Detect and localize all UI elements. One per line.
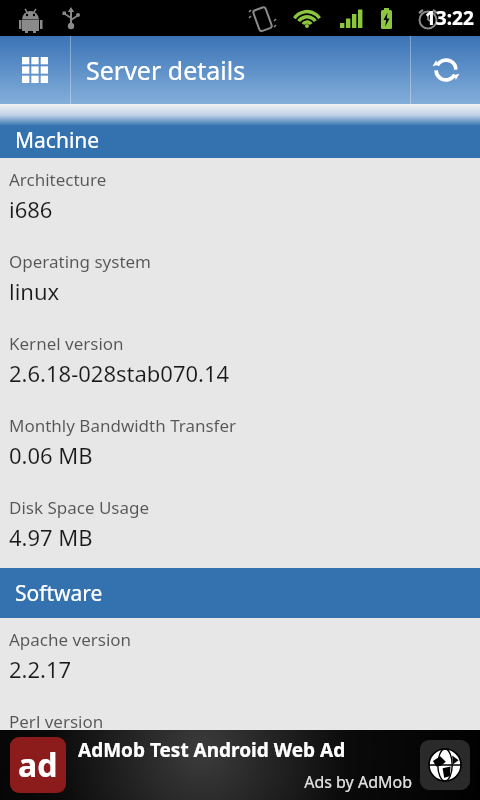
staticText: AdMob Test Android Web Ad <box>78 737 346 763</box>
staticText: Apache version <box>9 628 132 651</box>
staticText: Disk Space Usage <box>9 496 150 519</box>
button[interactable]: Software <box>0 568 480 618</box>
button[interactable]: Perl version <box>0 700 480 730</box>
button[interactable]: Machine <box>0 126 480 158</box>
button[interactable]: Disk Space Usage <box>0 486 480 568</box>
button[interactable]: Architecture <box>0 158 480 240</box>
staticText: Software <box>15 579 103 608</box>
staticText: Ads by AdMob <box>78 771 412 793</box>
staticText: 2.6.18-028stab070.14 <box>9 358 230 388</box>
staticText: 13:22 <box>425 5 474 31</box>
staticText: Monthly Bandwidth Transfer <box>9 414 237 437</box>
button[interactable]: Refresh <box>411 36 480 104</box>
staticText: 2.2.17 <box>9 654 72 684</box>
button[interactable]: Apache version <box>0 618 480 700</box>
staticText: Machine <box>15 126 100 154</box>
staticText: 4.97 MB <box>9 522 93 552</box>
button[interactable]: Monthly Bandwidth Transfer <box>0 404 480 486</box>
staticText: ad <box>18 743 58 787</box>
button[interactable]: Server details <box>71 36 410 104</box>
button[interactable]: Open ad <box>420 740 470 790</box>
button[interactable]: Apps <box>0 36 70 104</box>
staticText: 0.06 MB <box>9 440 93 470</box>
staticText: Perl version <box>9 710 104 730</box>
button[interactable]: ad <box>0 730 480 800</box>
staticText: i686 <box>9 194 53 224</box>
button[interactable]: Kernel version <box>0 322 480 404</box>
staticText: linux <box>9 276 60 306</box>
staticText: Kernel version <box>9 332 124 355</box>
staticText: Architecture <box>9 168 107 191</box>
staticText: Server details <box>86 53 246 87</box>
staticText: Operating system <box>9 250 152 273</box>
button[interactable]: Operating system <box>0 240 480 322</box>
